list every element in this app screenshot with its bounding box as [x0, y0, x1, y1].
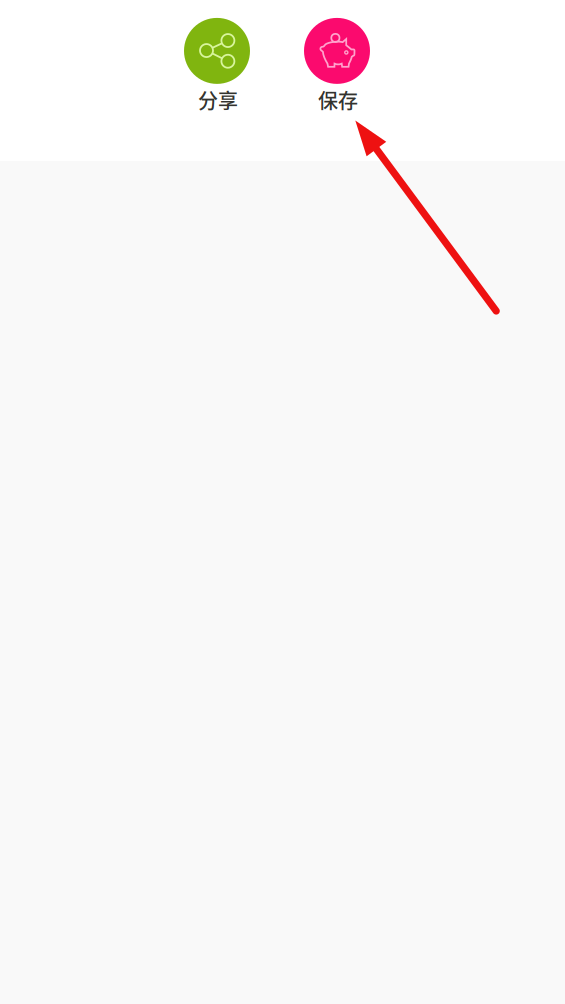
button[interactable]: 保存	[285, 18, 389, 114]
staticText: 分享	[198, 85, 238, 114]
button[interactable]: 分享	[165, 18, 269, 114]
staticText: 保存	[318, 85, 358, 114]
